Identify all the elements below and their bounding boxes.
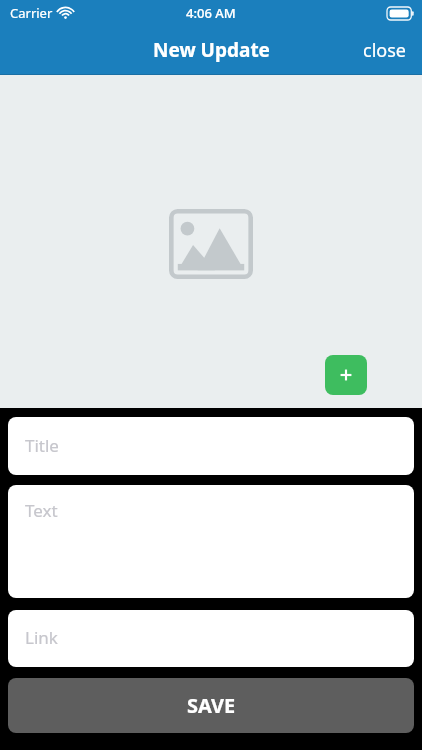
button[interactable]: SAVE xyxy=(8,678,414,733)
staticText: 4:06 AM xyxy=(186,4,236,22)
button[interactable]: Link xyxy=(8,610,414,667)
button[interactable]: Add image xyxy=(169,209,253,279)
button[interactable]: Title xyxy=(8,417,414,475)
staticText: SAVE xyxy=(187,692,236,719)
staticText: Link xyxy=(25,626,58,649)
button[interactable]: Add xyxy=(325,355,367,395)
staticText: Title xyxy=(25,434,59,457)
button[interactable]: Text xyxy=(8,485,414,598)
button[interactable]: close xyxy=(347,28,422,73)
staticText: close xyxy=(363,38,406,63)
staticText: Text xyxy=(25,499,58,522)
staticText: New Update xyxy=(153,37,270,63)
staticText: Carrier xyxy=(10,4,53,22)
